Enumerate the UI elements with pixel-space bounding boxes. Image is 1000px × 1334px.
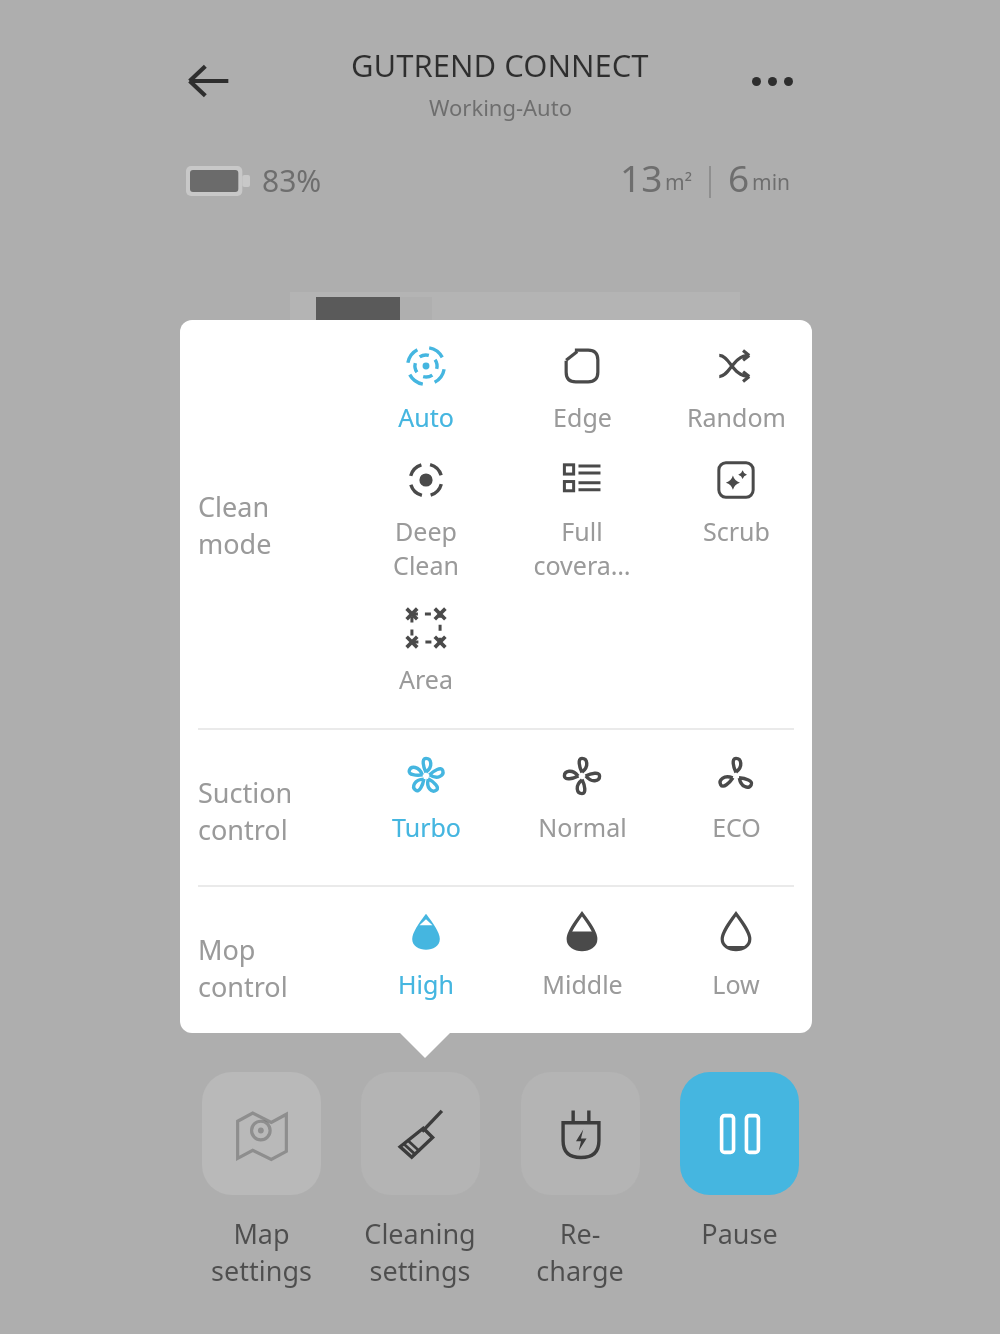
staticText: Auto bbox=[398, 400, 454, 434]
staticText: Area bbox=[399, 662, 453, 696]
staticText: Full covera… bbox=[533, 514, 631, 582]
staticText: Turbo bbox=[392, 810, 461, 844]
staticText: Map settings bbox=[211, 1215, 312, 1289]
staticText: Suction bbox=[198, 774, 293, 811]
staticText: Deep Clean bbox=[393, 514, 459, 582]
staticText: Pause bbox=[701, 1215, 778, 1252]
button[interactable]: Random bbox=[660, 320, 812, 434]
button[interactable]: Auto bbox=[348, 320, 504, 434]
button[interactable]: Map settings bbox=[196, 1072, 326, 1289]
button[interactable]: High bbox=[348, 887, 504, 1001]
button[interactable]: Edge bbox=[504, 320, 660, 434]
button[interactable]: More options bbox=[735, 44, 809, 118]
button[interactable]: Deep Clean bbox=[348, 434, 504, 582]
staticText: 6 bbox=[728, 152, 750, 202]
staticText: Middle bbox=[542, 967, 623, 1001]
staticText: Low bbox=[712, 967, 760, 1001]
button[interactable]: Normal bbox=[504, 730, 660, 844]
button[interactable]: ECO bbox=[660, 730, 812, 844]
staticText: Scrub bbox=[703, 514, 770, 548]
staticText: High bbox=[398, 967, 454, 1001]
staticText: Re- charge bbox=[536, 1215, 624, 1289]
button[interactable]: Low bbox=[660, 887, 812, 1001]
staticText: m² bbox=[665, 168, 692, 197]
button[interactable]: Area bbox=[348, 582, 504, 696]
staticText: GUTREND CONNECT bbox=[351, 44, 649, 86]
button[interactable]: Pause bbox=[674, 1072, 804, 1252]
staticText: 83% bbox=[262, 160, 322, 201]
staticText: Mop bbox=[198, 931, 256, 968]
staticText: control bbox=[198, 968, 288, 1005]
staticText: Cleaning settings bbox=[364, 1215, 476, 1289]
button[interactable]: Back bbox=[172, 44, 246, 118]
staticText: 13 bbox=[620, 152, 663, 202]
staticText: min bbox=[752, 168, 791, 197]
staticText: ECO bbox=[712, 810, 761, 844]
button[interactable]: Cleaning settings bbox=[355, 1072, 485, 1289]
button[interactable]: Scrub bbox=[660, 434, 812, 548]
staticText: Normal bbox=[538, 810, 627, 844]
button[interactable]: Re- charge bbox=[515, 1072, 645, 1289]
staticText: Working-Auto bbox=[429, 92, 572, 122]
button[interactable]: Full covera… bbox=[504, 434, 660, 582]
staticText: mode bbox=[198, 525, 272, 562]
button[interactable]: Middle bbox=[504, 887, 660, 1001]
staticText: Clean bbox=[198, 488, 270, 525]
staticText: Edge bbox=[553, 400, 612, 434]
staticText: control bbox=[198, 811, 288, 848]
staticText: Random bbox=[687, 400, 786, 434]
button[interactable]: Turbo bbox=[348, 730, 504, 844]
